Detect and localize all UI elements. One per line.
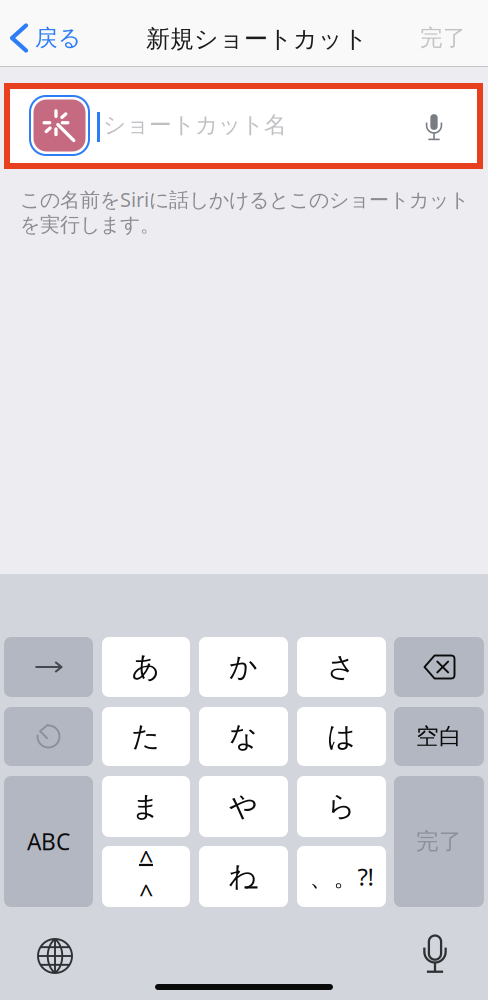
staticText: この名前をSiriに話しかけるとこのショートカットを実行します。 bbox=[20, 186, 469, 237]
button[interactable]: あ bbox=[102, 637, 190, 697]
button[interactable]: 完了 bbox=[394, 776, 484, 907]
button[interactable]: Dictate bbox=[412, 103, 456, 151]
button[interactable]: た bbox=[102, 707, 190, 766]
staticText: わ bbox=[228, 859, 257, 894]
button[interactable]: わ bbox=[199, 846, 288, 907]
button[interactable]: 完了 bbox=[388, 11, 488, 65]
staticText: か bbox=[229, 650, 258, 684]
button[interactable]: は bbox=[297, 707, 386, 766]
button[interactable]: Dictate bbox=[407, 928, 463, 980]
button[interactable]: ^^ bbox=[102, 846, 190, 907]
staticText: 完了 bbox=[420, 24, 466, 52]
button[interactable]: か bbox=[199, 637, 288, 697]
button[interactable]: Switch keyboard bbox=[27, 930, 83, 982]
staticText: 空白 bbox=[416, 723, 462, 750]
button[interactable]: Undo bbox=[4, 707, 93, 766]
staticText: や bbox=[229, 789, 258, 824]
staticText: た bbox=[131, 719, 160, 754]
button[interactable]: ABC bbox=[4, 776, 93, 907]
staticText: あ bbox=[131, 650, 160, 684]
staticText: ら bbox=[327, 789, 356, 824]
staticText: 戻る bbox=[35, 24, 81, 52]
button[interactable]: 戻る bbox=[0, 11, 122, 65]
staticText: 新規ショートカット bbox=[146, 24, 368, 54]
button[interactable]: ら bbox=[297, 776, 386, 837]
button[interactable]: Advance cursor bbox=[4, 637, 93, 697]
staticText: さ bbox=[327, 650, 356, 684]
staticText: 、。?! bbox=[309, 860, 373, 892]
button[interactable]: さ bbox=[297, 637, 386, 697]
staticText: な bbox=[229, 719, 258, 754]
button[interactable]: や bbox=[199, 776, 288, 837]
staticText: ^^ bbox=[139, 843, 153, 910]
button[interactable]: な bbox=[199, 707, 288, 766]
staticText: は bbox=[327, 719, 356, 754]
staticText: ショートカット名 bbox=[103, 111, 287, 139]
staticText: ABC bbox=[27, 826, 70, 856]
staticText: 完了 bbox=[416, 828, 462, 855]
button[interactable]: 空白 bbox=[394, 707, 484, 766]
button[interactable]: 、。?! bbox=[297, 846, 386, 907]
staticText: ま bbox=[131, 789, 160, 824]
button[interactable]: ま bbox=[102, 776, 190, 837]
button[interactable]: Delete bbox=[394, 637, 484, 697]
